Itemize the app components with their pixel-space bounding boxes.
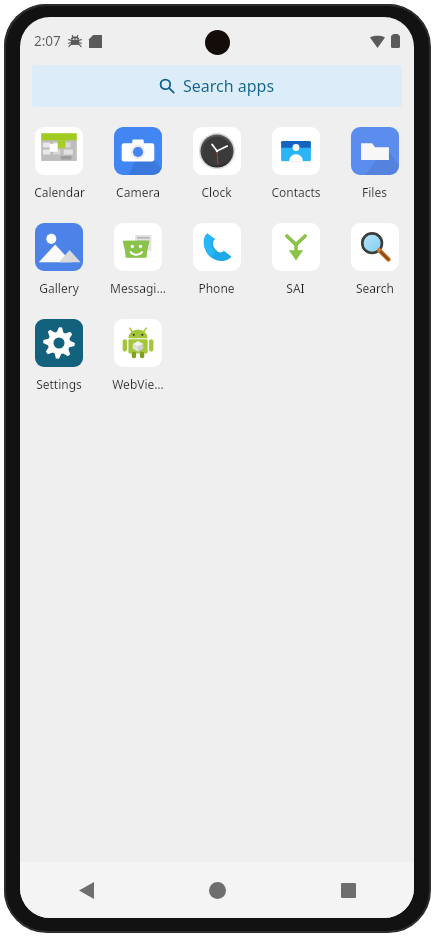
button[interactable]: Phone xyxy=(177,215,256,311)
staticText: Gallery xyxy=(39,280,79,296)
staticText: Clock xyxy=(201,184,232,200)
button[interactable]: Contacts xyxy=(256,119,335,215)
button[interactable]: Messagi… xyxy=(98,215,177,311)
button[interactable]: Recent apps xyxy=(283,862,414,918)
button[interactable]: Clock xyxy=(177,119,256,215)
staticText: Search xyxy=(356,280,394,296)
staticText: Search apps xyxy=(183,75,275,97)
staticText: Settings xyxy=(36,376,82,392)
staticText: Messagi… xyxy=(110,280,166,296)
button[interactable]: Files xyxy=(335,119,414,215)
button[interactable]: Search xyxy=(335,215,414,311)
staticText: Files xyxy=(362,184,387,200)
staticText: 2:07 xyxy=(34,32,61,50)
staticText: Contacts xyxy=(271,184,321,200)
staticText: Phone xyxy=(198,280,235,296)
button[interactable]: Calendar xyxy=(20,119,98,215)
button[interactable]: Camera xyxy=(98,119,177,215)
button[interactable]: Settings xyxy=(20,311,98,407)
staticText: Camera xyxy=(116,184,160,200)
staticText: WebVie… xyxy=(112,376,164,392)
button[interactable]: Back xyxy=(20,862,152,918)
button[interactable]: WebVie… xyxy=(98,311,177,407)
button[interactable]: Gallery xyxy=(20,215,98,311)
button[interactable]: Home xyxy=(152,862,283,918)
button[interactable]: Search apps xyxy=(32,65,402,107)
button[interactable]: SAI xyxy=(256,215,335,311)
staticText: Calendar xyxy=(34,184,85,200)
staticText: SAI xyxy=(286,280,305,296)
